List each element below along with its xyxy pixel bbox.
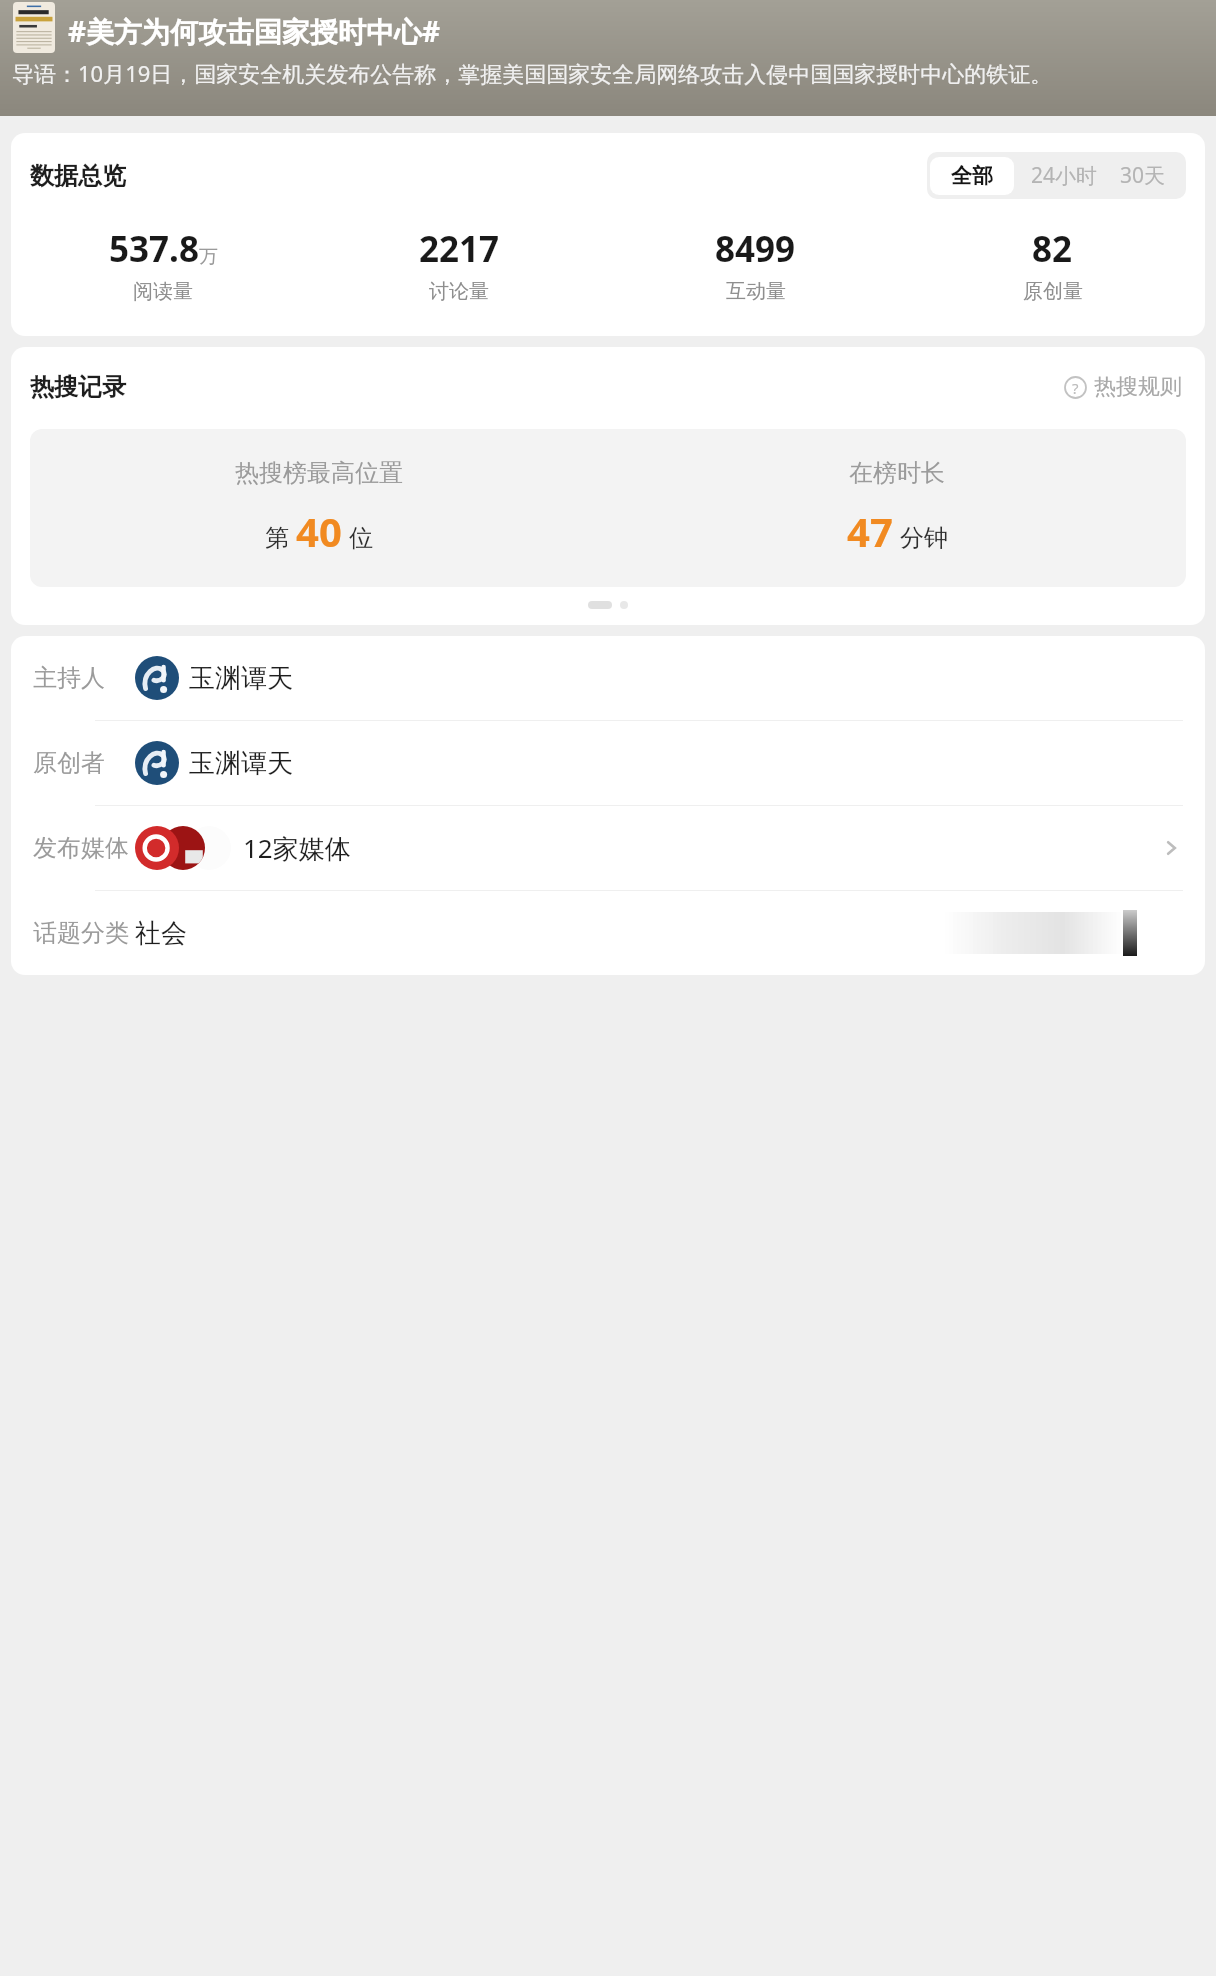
staticText: 热搜榜最高位置: [235, 458, 403, 488]
staticText: 话题分类: [33, 918, 129, 948]
staticText: 热搜规则: [1094, 373, 1182, 401]
staticText: 发布媒体: [33, 833, 129, 863]
button[interactable]: 24小时: [1017, 152, 1112, 199]
button[interactable]: 全部: [930, 157, 1014, 195]
staticText: 社会: [135, 917, 187, 950]
button[interactable]: 原创者: [11, 721, 1205, 805]
staticText: 82: [1032, 225, 1073, 273]
staticText: 互动量: [726, 279, 786, 304]
staticText: 玉渊谭天: [189, 662, 293, 695]
staticText: 原创量: [1023, 279, 1083, 304]
staticText: 47: [847, 504, 893, 558]
button[interactable]: ?: [1060, 369, 1186, 405]
staticText: 8499: [715, 225, 796, 273]
staticText: 玉渊谭天: [189, 747, 293, 780]
staticText: #美方为何攻击国家授时中心#: [68, 12, 441, 50]
staticText: 24小时: [1031, 161, 1098, 190]
button[interactable]: 2217: [311, 225, 607, 304]
staticText: 热搜记录: [30, 372, 126, 402]
staticText: 12家媒体: [243, 830, 351, 866]
staticText: 30天: [1120, 161, 1166, 190]
staticText: 导语：10月19日，国家安全机关发布公告称，掌握美国国家安全局网络攻击入侵中国国…: [12, 58, 1053, 88]
button[interactable]: 82: [904, 225, 1201, 304]
staticText: 原创者: [33, 748, 129, 778]
staticText: 全部: [951, 163, 993, 189]
staticText: 2217: [419, 225, 500, 273]
staticText: 数据总览: [30, 161, 126, 191]
button[interactable]: 主持人: [11, 636, 1205, 720]
staticText: 讨论量: [429, 279, 489, 304]
staticText: 阅读量: [133, 279, 193, 304]
button[interactable]: 热搜榜最高位置: [30, 458, 608, 558]
staticText: 第: [265, 523, 289, 553]
button[interactable]: 话题分类: [11, 891, 1205, 975]
staticText: 分钟: [900, 523, 948, 553]
staticText: ?: [1072, 378, 1079, 398]
button[interactable]: 537.8: [15, 225, 311, 304]
button[interactable]: Topic poster: [13, 2, 55, 53]
button[interactable]: 在榜时长: [608, 458, 1186, 558]
button[interactable]: 发布媒体: [11, 806, 1205, 890]
staticText: 主持人: [33, 663, 129, 693]
staticText: 537.8: [109, 225, 199, 273]
button[interactable]: 30天: [1112, 152, 1186, 199]
staticText: 40: [296, 504, 342, 558]
other: More media: [1159, 836, 1183, 860]
button[interactable]: 8499: [607, 225, 904, 304]
staticText: 在榜时长: [849, 458, 945, 488]
staticText: 位: [349, 523, 373, 553]
staticText: 万: [199, 245, 218, 269]
